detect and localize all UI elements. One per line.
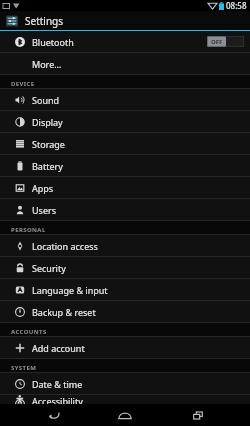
staticText: Language & input	[32, 284, 108, 296]
button[interactable]: Apps	[0, 177, 250, 198]
staticText: OFF	[211, 38, 223, 46]
staticText: Backup & reset	[32, 306, 96, 318]
button[interactable]: Sound	[0, 89, 250, 110]
staticText: DEVICE	[11, 80, 35, 88]
button[interactable]: Bluetooth	[0, 31, 250, 52]
button[interactable]: Bluetooth toggle, off	[207, 36, 244, 47]
staticText: Security	[32, 262, 66, 274]
staticText: Users	[32, 204, 56, 216]
button[interactable]: Security	[0, 257, 250, 278]
staticText: Date & time	[32, 378, 83, 390]
staticText: Apps	[32, 182, 54, 194]
staticText: Add account	[32, 342, 85, 354]
staticText: Storage	[32, 138, 65, 150]
button[interactable]: Language & input	[0, 279, 250, 300]
button[interactable]: Back	[33, 404, 73, 426]
button[interactable]: Backup & reset	[0, 301, 250, 322]
staticText: Bluetooth	[32, 36, 74, 48]
button[interactable]: Display	[0, 111, 250, 132]
button[interactable]: Accessibility	[0, 395, 250, 404]
staticText: PERSONAL	[11, 226, 46, 234]
button[interactable]: Recent apps	[178, 404, 218, 426]
button[interactable]: Home	[105, 404, 145, 426]
button[interactable]: Date & time	[0, 373, 250, 394]
button[interactable]: More…	[0, 53, 250, 74]
staticText: Location access	[32, 240, 98, 252]
staticText: ACCOUNTS	[11, 328, 47, 336]
button[interactable]: Users	[0, 199, 250, 220]
staticText: More…	[32, 58, 62, 70]
staticText: Display	[32, 116, 63, 128]
staticText: SYSTEM	[11, 364, 37, 372]
button[interactable]: Storage	[0, 133, 250, 154]
button[interactable]: Battery	[0, 155, 250, 176]
staticText: Sound	[32, 94, 60, 106]
staticText: Settings	[25, 14, 64, 28]
staticText: Accessibility	[32, 395, 83, 404]
staticText: Battery	[32, 160, 63, 172]
staticText: 08:58	[226, 0, 247, 11]
button[interactable]: Location access	[0, 235, 250, 256]
button[interactable]: Add account	[0, 337, 250, 358]
